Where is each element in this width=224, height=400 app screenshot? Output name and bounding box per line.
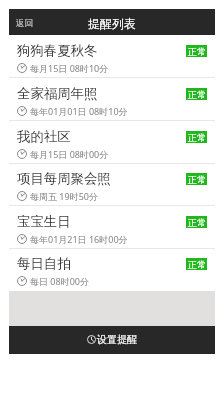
button[interactable]: 全家福周年照 [9, 78, 215, 121]
staticText: 正常 [188, 46, 206, 57]
staticText: 提醒列表 [88, 16, 136, 31]
staticText: 每年01月21日 16时00分 [30, 233, 128, 245]
staticText: 项目每周聚会照 [17, 170, 111, 187]
staticText: 我的社区 [17, 128, 71, 145]
staticText: 正常 [188, 132, 206, 143]
button[interactable]: 每日自拍 [9, 249, 215, 291]
staticText: 正常 [188, 259, 206, 270]
staticText: 每日 08时00分 [30, 275, 89, 287]
staticText: 每年01月01日 08时10分 [30, 105, 128, 117]
button[interactable]: 狗狗春夏秋冬 [9, 35, 215, 78]
staticText: 设置提醒 [97, 333, 137, 346]
staticText: 正常 [188, 174, 206, 185]
staticText: 每日自拍 [17, 255, 71, 272]
button[interactable]: 宝宝生日 [9, 206, 215, 249]
staticText: 正常 [188, 217, 206, 228]
staticText: 返回 [16, 18, 33, 29]
button[interactable]: 返回 [9, 12, 40, 33]
button[interactable]: 设置提醒 [9, 326, 215, 354]
staticText: 每月15日 08时10分 [30, 62, 109, 74]
staticText: 宝宝生日 [17, 213, 71, 230]
staticText: 每周五 19时50分 [30, 190, 98, 202]
staticText: 每月15日 08时00分 [30, 148, 109, 160]
button[interactable]: 我的社区 [9, 121, 215, 164]
staticText: 全家福周年照 [17, 85, 98, 102]
staticText: 狗狗春夏秋冬 [17, 42, 98, 59]
button[interactable]: 项目每周聚会照 [9, 164, 215, 206]
staticText: 正常 [188, 89, 206, 100]
